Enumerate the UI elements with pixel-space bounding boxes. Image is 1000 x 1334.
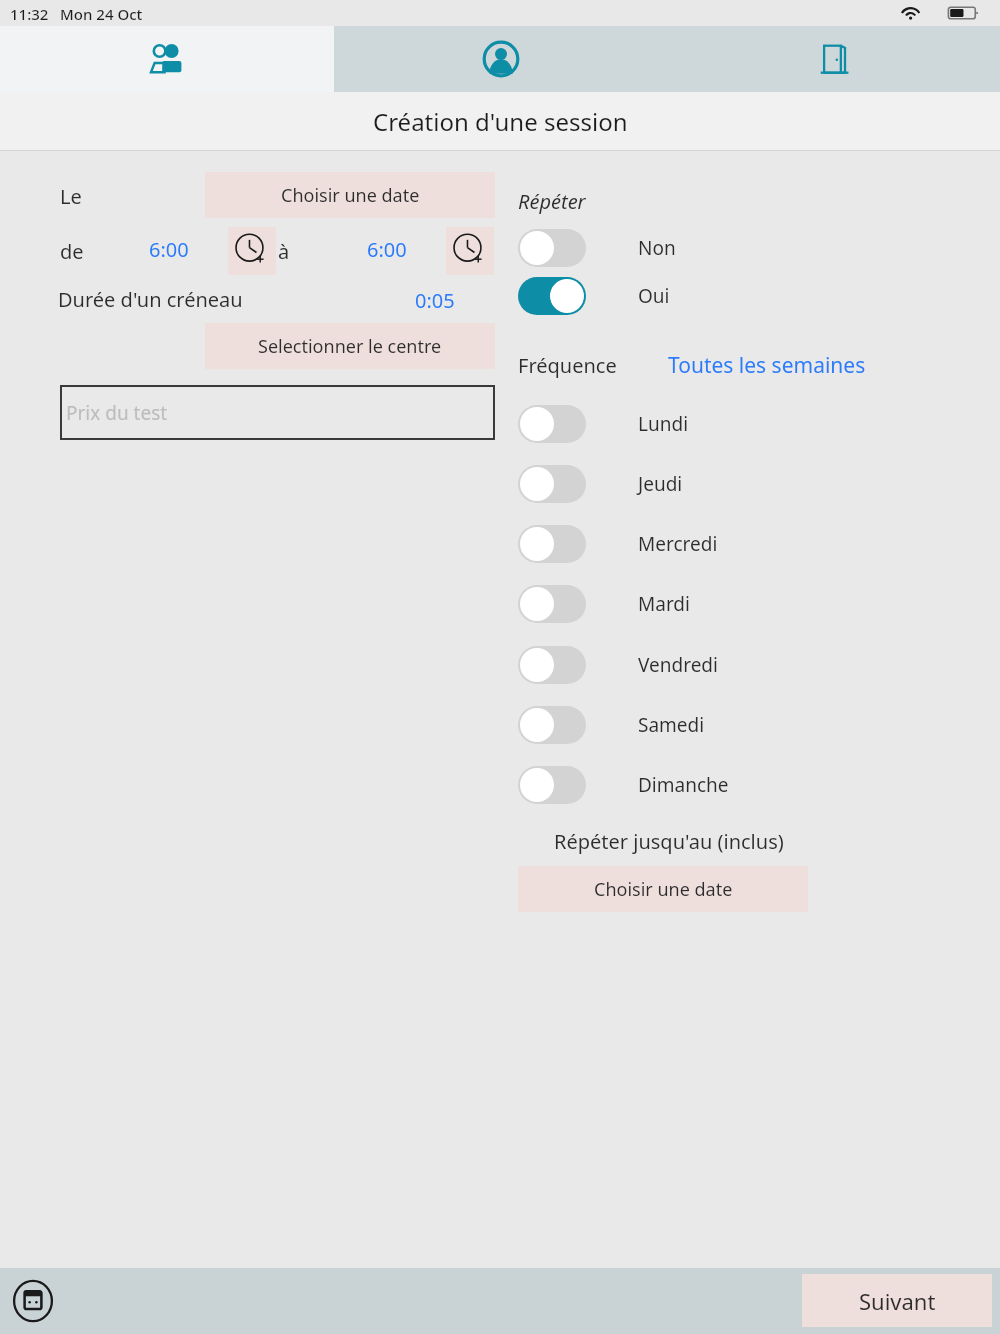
button[interactable]: Oui: [518, 274, 858, 318]
staticText: 6:00: [367, 236, 407, 263]
staticText: Prix du test: [66, 400, 168, 426]
button[interactable]: Mercredi: [518, 522, 858, 566]
button[interactable]: Déconnexion: [667, 26, 1000, 92]
button[interactable]: Mon compte: [334, 26, 667, 92]
staticText: Mardi: [638, 591, 690, 617]
button[interactable]: Mardi: [518, 582, 858, 626]
button[interactable]: 6:00: [138, 232, 200, 266]
staticText: Création d'une session: [373, 105, 628, 138]
staticText: Lundi: [638, 411, 689, 437]
staticText: Selectionner le centre: [258, 334, 442, 359]
button[interactable]: Dimanche: [518, 763, 858, 807]
staticText: Répéter jusqu'au (inclus): [554, 828, 784, 855]
staticText: Vendredi: [638, 652, 718, 678]
staticText: 6:00: [149, 236, 189, 263]
button[interactable]: Choisir une date: [518, 866, 808, 912]
button[interactable]: Prix du test: [60, 385, 495, 440]
staticText: Non: [638, 235, 676, 261]
button[interactable]: Participants: [0, 26, 334, 92]
button[interactable]: 0:05: [404, 284, 466, 316]
button[interactable]: Suivant: [802, 1274, 992, 1327]
button[interactable]: Heure de fin: [446, 227, 494, 275]
staticText: Fréquence: [518, 352, 617, 379]
staticText: Durée d'un créneau: [58, 286, 243, 313]
button[interactable]: Non: [518, 226, 858, 270]
staticText: Jeudi: [638, 471, 683, 497]
button[interactable]: Choisir une date: [205, 172, 495, 218]
button[interactable]: Vendredi: [518, 643, 858, 687]
staticText: Suivant: [859, 1286, 936, 1316]
staticText: Toutes les semaines: [668, 351, 866, 380]
staticText: Choisir une date: [281, 183, 420, 208]
staticText: Dimanche: [638, 772, 729, 798]
button[interactable]: Agenda: [12, 1280, 54, 1322]
staticText: 11:32 Mon 24 Oct: [10, 4, 143, 24]
button[interactable]: 6:00: [356, 232, 418, 266]
staticText: à: [278, 238, 290, 265]
staticText: Choisir une date: [594, 877, 733, 902]
button[interactable]: Selectionner le centre: [205, 323, 495, 369]
button[interactable]: Lundi: [518, 402, 858, 446]
staticText: Oui: [638, 283, 670, 309]
button[interactable]: Toutes les semaines: [668, 348, 868, 382]
staticText: de: [60, 238, 84, 265]
button[interactable]: Heure de début: [228, 227, 276, 275]
staticText: 0:05: [415, 287, 455, 314]
staticText: Répéter: [518, 188, 586, 215]
button[interactable]: Samedi: [518, 703, 858, 747]
button[interactable]: Jeudi: [518, 462, 858, 506]
staticText: Le: [60, 183, 82, 210]
staticText: Samedi: [638, 712, 705, 738]
staticText: Mercredi: [638, 531, 718, 557]
